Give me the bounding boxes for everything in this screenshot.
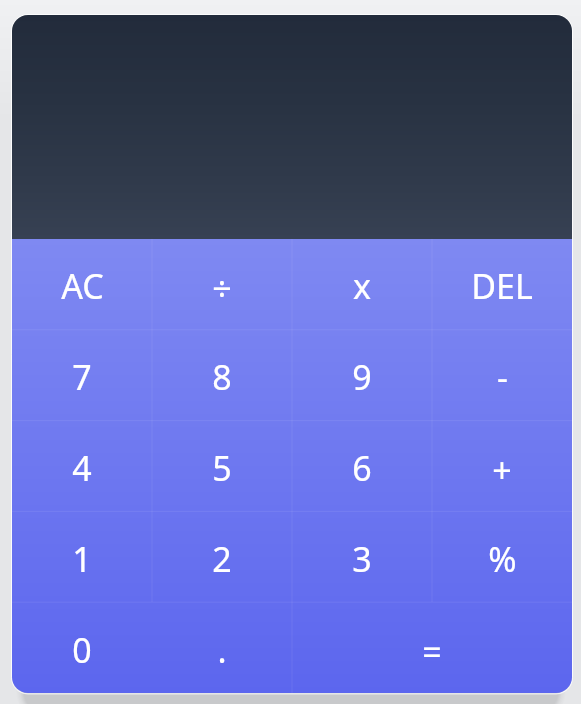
staticText: 2	[212, 536, 232, 582]
staticText: DEL	[471, 263, 533, 309]
button[interactable]: 8	[152, 329, 292, 420]
staticText: ÷	[212, 265, 232, 311]
button[interactable]: 6	[292, 420, 432, 511]
button[interactable]: x	[292, 239, 432, 329]
staticText: 4	[72, 445, 92, 491]
button[interactable]: 9	[292, 329, 432, 420]
staticText: %	[488, 536, 517, 582]
button[interactable]: 7	[12, 329, 152, 420]
button[interactable]: ÷	[152, 239, 292, 329]
button[interactable]: 5	[152, 420, 292, 511]
button[interactable]: 4	[12, 420, 152, 511]
staticText: 9	[352, 354, 372, 400]
button[interactable]: 2	[152, 511, 292, 602]
staticText: x	[353, 263, 371, 309]
button[interactable]: 1	[12, 511, 152, 602]
staticText: 7	[72, 354, 92, 400]
staticText: -	[497, 354, 508, 400]
staticText: 6	[352, 445, 372, 491]
staticText: 1	[72, 536, 92, 582]
staticText: 5	[212, 445, 232, 491]
staticText: 8	[212, 354, 232, 400]
button[interactable]: AC	[12, 239, 152, 329]
staticText: 0	[72, 627, 92, 673]
button[interactable]: +	[432, 420, 572, 511]
button[interactable]: DEL	[432, 239, 572, 329]
button[interactable]: -	[432, 329, 572, 420]
staticText: 3	[352, 536, 372, 582]
button[interactable]: 0	[12, 602, 152, 693]
button[interactable]: =	[292, 602, 572, 693]
staticText: .	[217, 627, 227, 673]
staticText: AC	[61, 263, 104, 309]
staticText: =	[422, 629, 442, 675]
button[interactable]: 3	[292, 511, 432, 602]
button[interactable]: .	[152, 602, 292, 693]
staticText: +	[492, 447, 512, 493]
button[interactable]: %	[432, 511, 572, 602]
